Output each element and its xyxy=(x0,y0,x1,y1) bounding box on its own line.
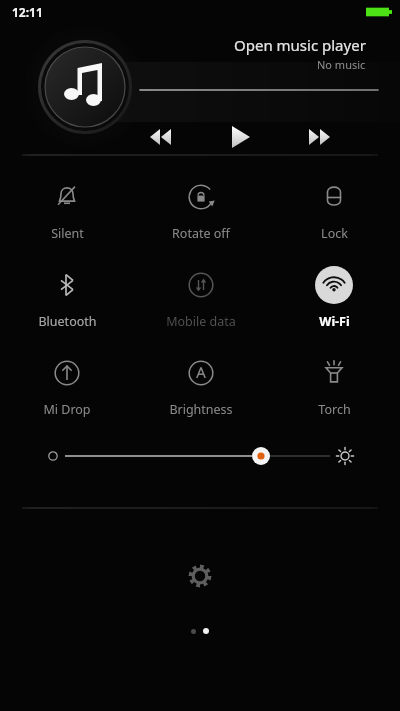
staticText: Brightness xyxy=(169,401,233,418)
button[interactable]: Rotate off xyxy=(146,178,256,242)
staticText: Wi-Fi xyxy=(319,313,350,330)
staticText: Torch xyxy=(318,401,351,418)
button[interactable]: Settings xyxy=(177,553,223,599)
button[interactable]: Brightness slider xyxy=(0,434,400,478)
button[interactable]: Mobile data xyxy=(146,266,256,330)
button[interactable]: Brightness xyxy=(146,354,256,418)
button[interactable]: Open music player xyxy=(0,24,400,154)
button[interactable]: Mi Drop xyxy=(12,354,122,418)
button[interactable]: Next xyxy=(290,120,330,154)
staticText: Open music player xyxy=(234,35,366,55)
button[interactable]: Previous xyxy=(150,120,190,154)
button[interactable]: Play xyxy=(220,120,260,154)
staticText: Mobile data xyxy=(166,313,236,330)
button[interactable]: Silent xyxy=(12,178,122,242)
staticText: Lock xyxy=(321,225,348,242)
button[interactable]: Torch xyxy=(279,354,389,418)
button[interactable]: Bluetooth xyxy=(12,266,122,330)
staticText: Bluetooth xyxy=(38,313,97,330)
button[interactable]: Lock xyxy=(279,178,389,242)
staticText: Silent xyxy=(51,225,84,242)
staticText: 12:11 xyxy=(12,4,43,20)
staticText: Rotate off xyxy=(172,225,230,242)
button[interactable]: Wi-Fi xyxy=(279,266,389,330)
staticText: No music xyxy=(317,57,366,72)
staticText: Mi Drop xyxy=(43,401,91,418)
